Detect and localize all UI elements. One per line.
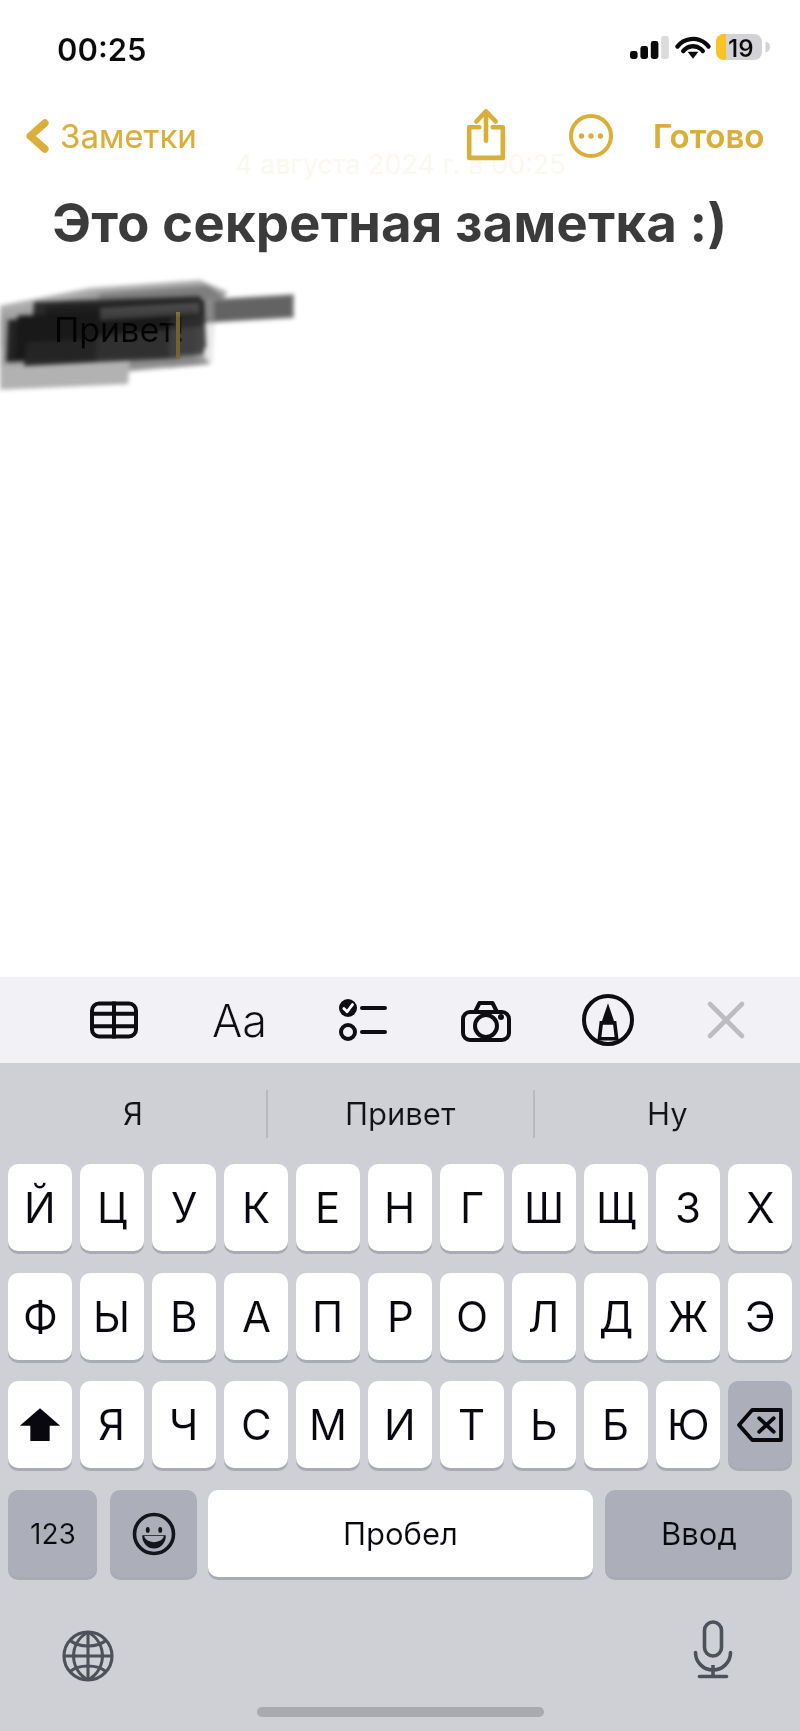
staticText: Я bbox=[98, 1399, 126, 1450]
staticText: Ж bbox=[668, 1291, 709, 1342]
staticText: 123 bbox=[30, 1517, 76, 1551]
staticText: З bbox=[675, 1182, 701, 1233]
staticText: Ф bbox=[23, 1291, 58, 1342]
button[interactable]: Ь bbox=[512, 1381, 576, 1468]
staticText: В bbox=[170, 1291, 198, 1342]
button[interactable]: Т bbox=[440, 1381, 504, 1468]
staticText: Aa bbox=[212, 993, 268, 1047]
staticText: Ч bbox=[169, 1399, 199, 1450]
staticText: К bbox=[242, 1182, 271, 1233]
staticText: Пробел bbox=[343, 1515, 458, 1553]
staticText: О bbox=[456, 1291, 489, 1342]
button[interactable]: More options bbox=[557, 102, 625, 170]
button[interactable]: П bbox=[296, 1273, 360, 1360]
button[interactable]: Г bbox=[440, 1164, 504, 1251]
button[interactable]: В bbox=[152, 1273, 216, 1360]
staticText: Ну bbox=[647, 1095, 688, 1133]
button[interactable]: Р bbox=[368, 1273, 432, 1360]
staticText: Й bbox=[24, 1182, 56, 1233]
staticText: Щ bbox=[596, 1182, 637, 1233]
staticText: Е bbox=[315, 1182, 341, 1233]
staticText: Д bbox=[599, 1291, 634, 1342]
staticText: 19 bbox=[728, 34, 754, 60]
button[interactable]: Change keyboard bbox=[53, 1621, 123, 1691]
staticText: Ш bbox=[524, 1182, 565, 1233]
button[interactable]: Заметки bbox=[24, 103, 197, 169]
staticText: Э bbox=[745, 1291, 776, 1342]
button[interactable]: Return bbox=[605, 1490, 792, 1577]
button[interactable]: Text formatting bbox=[197, 977, 283, 1063]
button[interactable]: Щ bbox=[584, 1164, 648, 1251]
staticText: Привет bbox=[345, 1095, 456, 1133]
staticText: Р bbox=[387, 1291, 414, 1342]
button[interactable]: О bbox=[440, 1273, 504, 1360]
staticText: М bbox=[309, 1399, 347, 1450]
button[interactable]: Ну bbox=[535, 1063, 800, 1164]
staticText: Ь bbox=[530, 1399, 558, 1450]
button[interactable]: И bbox=[368, 1381, 432, 1468]
button[interactable]: Dictate bbox=[678, 1613, 748, 1683]
button[interactable]: Д bbox=[584, 1273, 648, 1360]
button[interactable]: Я bbox=[80, 1381, 144, 1468]
staticText: Заметки bbox=[60, 116, 197, 156]
staticText: Л bbox=[528, 1291, 560, 1342]
button[interactable]: Backspace bbox=[728, 1381, 792, 1468]
button[interactable]: У bbox=[152, 1164, 216, 1251]
button[interactable]: Х bbox=[728, 1164, 792, 1251]
button[interactable]: Л bbox=[512, 1273, 576, 1360]
button[interactable]: Ш bbox=[512, 1164, 576, 1251]
button[interactable]: Н bbox=[368, 1164, 432, 1251]
staticText: Готово bbox=[653, 116, 765, 156]
staticText: Г bbox=[460, 1182, 485, 1233]
staticText: Х bbox=[746, 1182, 775, 1233]
staticText: И bbox=[384, 1399, 416, 1450]
button[interactable]: Привет bbox=[268, 1063, 533, 1164]
staticText: Ю bbox=[667, 1399, 710, 1450]
button[interactable]: Э bbox=[728, 1273, 792, 1360]
button[interactable]: Emoji bbox=[110, 1490, 197, 1577]
button[interactable]: Я bbox=[0, 1063, 266, 1164]
button[interactable]: Ц bbox=[80, 1164, 144, 1251]
button[interactable]: А bbox=[224, 1273, 288, 1360]
button[interactable]: Space bbox=[208, 1490, 593, 1577]
staticText: Ы bbox=[93, 1291, 131, 1342]
button[interactable]: Shift bbox=[8, 1381, 72, 1468]
button[interactable]: Б bbox=[584, 1381, 648, 1468]
button[interactable]: Ж bbox=[656, 1273, 720, 1360]
staticText: С bbox=[241, 1399, 272, 1450]
staticText: Т bbox=[458, 1399, 486, 1450]
staticText: 00:25 bbox=[57, 31, 147, 69]
button[interactable]: З bbox=[656, 1164, 720, 1251]
staticText: Н bbox=[384, 1182, 416, 1233]
staticText: Ц bbox=[97, 1182, 128, 1233]
button[interactable]: Е bbox=[296, 1164, 360, 1251]
button[interactable]: К bbox=[224, 1164, 288, 1251]
button[interactable]: Markup bbox=[565, 977, 651, 1063]
button[interactable]: Готово bbox=[639, 102, 779, 170]
staticText: Ввод bbox=[661, 1515, 737, 1553]
button[interactable]: Checklist bbox=[319, 977, 405, 1063]
button[interactable]: Ф bbox=[8, 1273, 72, 1360]
staticText: П bbox=[312, 1291, 344, 1342]
button[interactable]: М bbox=[296, 1381, 360, 1468]
button[interactable]: Share bbox=[452, 101, 520, 169]
button[interactable]: Close keyboard bbox=[683, 977, 769, 1063]
button[interactable]: Й bbox=[8, 1164, 72, 1251]
staticText: 4 августа 2024 г. в 00:25 bbox=[235, 148, 566, 181]
button[interactable]: Ч bbox=[152, 1381, 216, 1468]
button[interactable]: Ю bbox=[656, 1381, 720, 1468]
staticText: Б bbox=[602, 1399, 630, 1450]
staticText: У bbox=[171, 1182, 198, 1233]
button[interactable]: С bbox=[224, 1381, 288, 1468]
button[interactable]: Camera bbox=[443, 977, 529, 1063]
button[interactable]: Numbers bbox=[8, 1490, 97, 1577]
button[interactable]: Table bbox=[71, 977, 157, 1063]
staticText: А bbox=[242, 1291, 271, 1342]
staticText: Я bbox=[123, 1095, 143, 1133]
button[interactable]: Ы bbox=[80, 1273, 144, 1360]
staticText: Это секретная заметка :) bbox=[52, 191, 728, 255]
staticText: Привет! bbox=[54, 309, 185, 350]
